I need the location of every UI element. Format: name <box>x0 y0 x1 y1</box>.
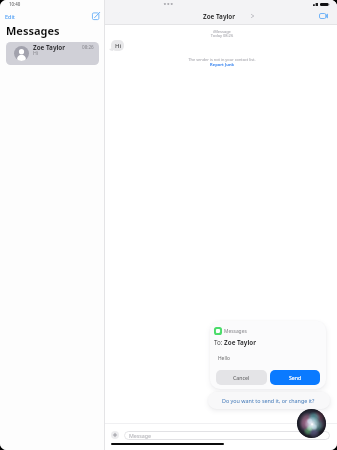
button[interactable]: Compose new message <box>89 9 103 23</box>
staticText: Cancel <box>233 374 250 381</box>
staticText: 10:40 <box>9 1 21 7</box>
button[interactable]: Report Junk <box>209 62 236 68</box>
button[interactable]: Zoe Taylor <box>200 10 256 22</box>
staticText: Hi <box>115 42 121 50</box>
staticText: Hello <box>218 355 230 362</box>
staticText: The sender is not in your contact list. <box>106 57 337 62</box>
button[interactable]: Zoe Taylor <box>6 42 99 65</box>
button[interactable]: Add attachment <box>111 431 119 439</box>
staticText: Send <box>289 374 302 381</box>
button[interactable]: FaceTime video call <box>315 9 331 22</box>
button[interactable]: Siri <box>297 409 326 438</box>
staticText: iMessage <box>106 29 337 34</box>
button[interactable]: Message <box>124 431 330 440</box>
staticText: Hi <box>33 49 39 56</box>
button[interactable]: Edit <box>3 12 17 21</box>
button[interactable]: Do you want to send it, or change it? <box>208 392 330 409</box>
staticText: Edit <box>5 13 15 20</box>
staticText: To: Zoe Taylor <box>214 338 256 347</box>
staticText: Messages <box>224 328 247 335</box>
staticText: Do you want to send it, or change it? <box>222 397 315 404</box>
staticText: Report Junk <box>210 62 235 68</box>
button[interactable]: Send <box>270 370 320 385</box>
staticText: Messages <box>6 23 60 38</box>
staticText: Today 08:26 <box>106 33 337 38</box>
button[interactable]: Cancel <box>216 370 267 385</box>
staticText: Zoe Taylor <box>33 43 66 52</box>
staticText: 08:26 <box>82 44 94 50</box>
staticText: Zoe Taylor <box>203 12 236 21</box>
staticText: Message <box>129 432 152 439</box>
